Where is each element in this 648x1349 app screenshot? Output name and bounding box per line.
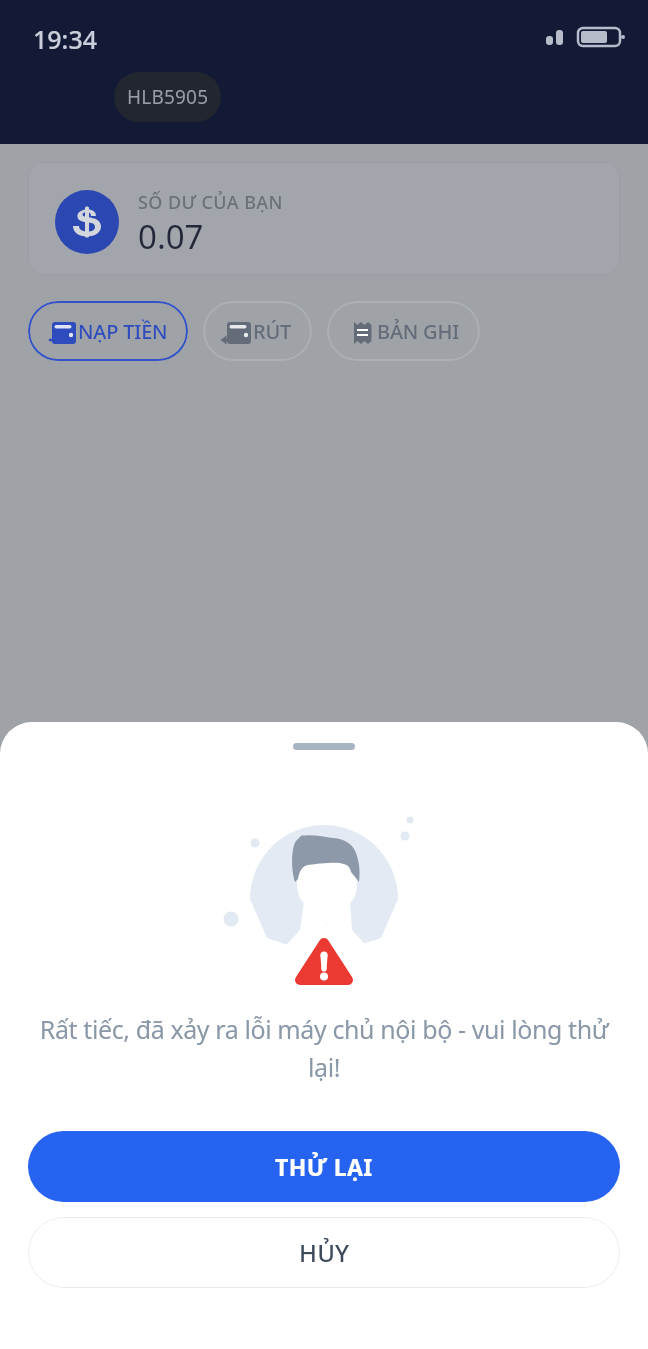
button[interactable]: RÚT bbox=[203, 301, 312, 361]
staticText: SỐ DƯ CỦA BẠN bbox=[138, 190, 283, 215]
button[interactable]: BẢN GHI bbox=[327, 301, 480, 361]
staticText: BẢN GHI bbox=[377, 318, 460, 345]
button[interactable]: HỦY bbox=[28, 1217, 620, 1288]
button[interactable]: SỐ DƯ CỦA BẠN bbox=[28, 162, 620, 275]
button[interactable]: HLB5905 bbox=[114, 72, 221, 122]
staticText: THỬ LẠI bbox=[275, 1151, 373, 1182]
staticText: 0.07 bbox=[138, 214, 204, 259]
staticText: 19:34 bbox=[33, 22, 98, 56]
button[interactable]: NẠP TIỀN bbox=[28, 301, 188, 361]
staticText: NẠP TIỀN bbox=[78, 318, 168, 345]
staticText: HỦY bbox=[299, 1236, 350, 1269]
staticText: HLB5905 bbox=[127, 84, 209, 110]
staticText: Rất tiếc, đã xảy ra lỗi máy chủ nội bộ -… bbox=[0, 1012, 648, 1084]
staticText: RÚT bbox=[253, 318, 292, 345]
button[interactable]: THỬ LẠI bbox=[28, 1131, 620, 1202]
